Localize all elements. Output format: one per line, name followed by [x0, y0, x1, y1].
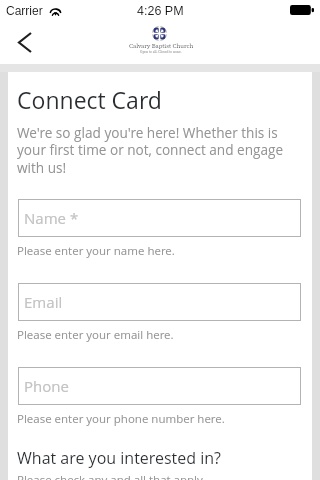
staticText: Phone [24, 376, 69, 396]
staticText: Connect Card [17, 84, 162, 115]
staticText: 4:26 PM [137, 4, 184, 18]
button[interactable]: Phone [18, 367, 301, 405]
staticText: We're so glad you're here! Whether this … [17, 123, 302, 177]
staticText: What are you interested in? [17, 447, 221, 469]
staticText: Please enter your name here. [17, 243, 175, 259]
staticText: Email [24, 292, 63, 312]
staticText: Open to all. Closed to none. [140, 49, 182, 54]
button[interactable]: Back [7, 24, 43, 60]
staticText: Calvary Baptist Church [129, 41, 194, 50]
staticText: Please enter your phone number here. [17, 411, 225, 427]
staticText: Carrier [6, 4, 43, 17]
staticText: Name * [24, 208, 79, 228]
staticText: Please enter your email here. [17, 327, 174, 343]
staticText: Please check any and all that apply. [17, 472, 206, 480]
button[interactable]: Name * [18, 199, 301, 237]
button[interactable]: Email [18, 283, 301, 321]
